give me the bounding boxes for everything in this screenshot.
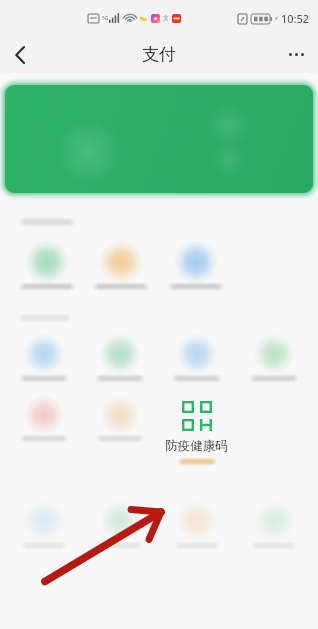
- button[interactable]: [249, 339, 299, 383]
- staticText: ⚡: [274, 15, 279, 23]
- button[interactable]: 防疫健康码: [165, 401, 228, 466]
- button[interactable]: [96, 401, 144, 443]
- button[interactable]: More options: [274, 36, 318, 73]
- button[interactable]: [174, 506, 220, 550]
- button[interactable]: [21, 506, 67, 550]
- staticText: 5G: [102, 15, 109, 22]
- button[interactable]: [172, 339, 222, 383]
- staticText: 支付: [142, 44, 176, 65]
- button[interactable]: [92, 247, 150, 291]
- button[interactable]: [251, 506, 297, 550]
- button[interactable]: Back: [0, 36, 40, 73]
- button[interactable]: [18, 247, 76, 291]
- staticText: 10:52: [281, 11, 310, 26]
- button[interactable]: [167, 247, 225, 291]
- button[interactable]: [97, 506, 143, 550]
- button[interactable]: [19, 339, 69, 383]
- button[interactable]: [95, 339, 145, 383]
- staticText: 文: [163, 14, 169, 22]
- button[interactable]: [20, 401, 68, 443]
- button[interactable]: [0, 79, 318, 201]
- staticText: 防疫健康码: [165, 438, 228, 454]
